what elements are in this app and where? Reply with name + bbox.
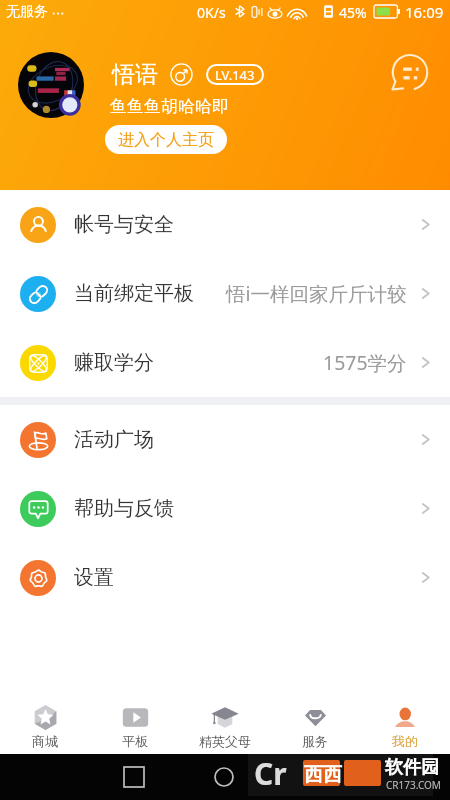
- staticText: 16:09: [405, 2, 444, 22]
- button[interactable]: 商城: [0, 695, 90, 754]
- staticText: 0K/s: [197, 3, 226, 22]
- button[interactable]: Messages: [389, 53, 431, 95]
- staticText: CR173.COM: [386, 778, 441, 792]
- button[interactable]: 设置: [0, 543, 450, 612]
- button[interactable]: Home: [214, 767, 234, 787]
- staticText: 帐号与安全: [74, 212, 174, 237]
- staticText: 活动广场: [74, 427, 154, 452]
- button[interactable]: 活动广场: [0, 405, 450, 474]
- staticText: 设置: [74, 565, 114, 590]
- staticText: 45%: [339, 3, 367, 22]
- staticText: 1575学分: [323, 349, 407, 376]
- staticText: 精英父母: [180, 733, 270, 749]
- staticText: 服务: [270, 733, 360, 749]
- staticText: 商城: [0, 733, 90, 749]
- staticText: 西西: [304, 763, 342, 787]
- staticText: 悟i一样回家斤斤计较: [226, 280, 407, 307]
- button[interactable]: 帮助与反馈: [0, 474, 450, 543]
- staticText: 帮助与反馈: [74, 496, 174, 521]
- button[interactable]: Recents: [124, 767, 144, 787]
- staticText: 赚取学分: [74, 350, 154, 375]
- button[interactable]: 赚取学分: [0, 328, 450, 397]
- staticText: 悟语: [112, 60, 158, 89]
- staticText: 软件园: [385, 756, 439, 779]
- staticText: 进入个人主页: [118, 130, 214, 150]
- staticText: 无服务: [6, 3, 48, 21]
- staticText: 鱼鱼鱼胡哈哈即: [110, 96, 229, 117]
- staticText: 我的: [360, 733, 450, 749]
- button[interactable]: 平板: [90, 695, 180, 754]
- staticText: LV.143: [215, 66, 255, 84]
- button[interactable]: 帐号与安全: [0, 190, 450, 259]
- button[interactable]: 当前绑定平板: [0, 259, 450, 328]
- button[interactable]: 进入个人主页: [105, 125, 227, 154]
- button[interactable]: 我的: [360, 695, 450, 754]
- staticText: Cr: [254, 753, 287, 794]
- button[interactable]: 精英父母: [180, 695, 270, 754]
- staticText: 当前绑定平板: [74, 281, 194, 306]
- button[interactable]: 服务: [270, 695, 360, 754]
- staticText: 平板: [90, 733, 180, 749]
